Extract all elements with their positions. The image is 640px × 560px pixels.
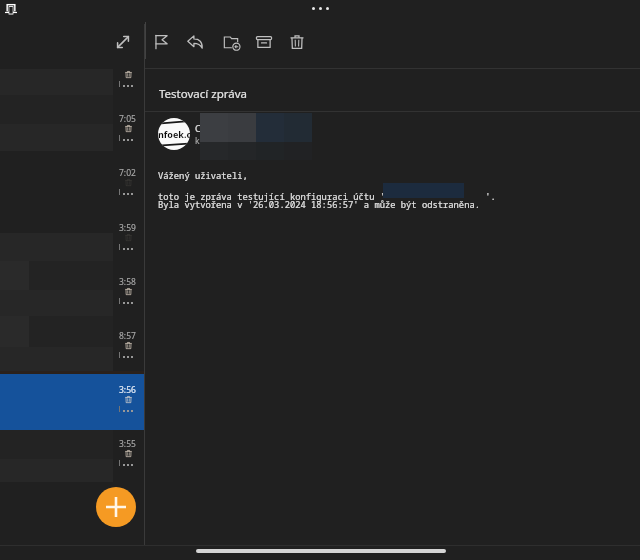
staticText: Vážený uživateli, bbox=[158, 170, 248, 182]
staticText: 3:59 bbox=[119, 222, 136, 234]
staticText: toto je zpráva testující konfiguraci účt… bbox=[158, 191, 496, 203]
staticText: nfoek.cz bbox=[158, 128, 190, 140]
button[interactable]: Reply bbox=[178, 25, 212, 59]
staticText: 7:05 bbox=[119, 113, 136, 125]
staticText: 3:56 bbox=[119, 384, 136, 396]
button[interactable]: Move to folder bbox=[214, 25, 248, 59]
staticText: Testovací zpráva bbox=[159, 86, 247, 102]
staticText: Byla vytvořena v '26.03.2024 18:56:57' a… bbox=[158, 199, 480, 211]
button[interactable]: Archive bbox=[247, 25, 281, 59]
staticText: 8:57 bbox=[119, 330, 136, 342]
button[interactable]: Compose bbox=[96, 487, 136, 527]
staticText: 7:02 bbox=[119, 167, 136, 179]
staticText: k bbox=[195, 135, 200, 147]
staticText: 3:58 bbox=[119, 276, 136, 288]
staticText: C bbox=[195, 122, 201, 134]
button[interactable]: Expand bbox=[106, 25, 140, 59]
button[interactable] bbox=[0, 374, 145, 430]
button[interactable]: Flag bbox=[144, 25, 178, 59]
staticText: 3:55 bbox=[119, 438, 136, 450]
button[interactable]: Delete bbox=[280, 25, 314, 59]
